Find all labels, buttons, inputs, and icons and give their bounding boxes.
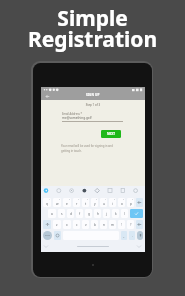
staticText: ? xyxy=(130,223,132,227)
staticText: h xyxy=(97,212,99,216)
button[interactable]: z xyxy=(53,220,61,229)
button[interactable]: a xyxy=(48,209,56,218)
staticText: Step 1 of 3 xyxy=(41,103,145,107)
button[interactable]: x xyxy=(63,220,71,229)
button[interactable]: 6 xyxy=(91,198,98,207)
button[interactable]: ! xyxy=(118,220,125,229)
staticText: 2 xyxy=(59,198,61,201)
button[interactable]: h xyxy=(94,209,101,218)
staticText: _ xyxy=(123,234,125,238)
staticText: 9 xyxy=(123,198,125,201)
staticText: 3 xyxy=(69,198,71,201)
button[interactable]: ?123 xyxy=(43,231,52,240)
staticText: k xyxy=(115,212,117,216)
staticText: f xyxy=(79,212,81,216)
staticText: a xyxy=(51,212,53,216)
staticText: j xyxy=(106,212,107,216)
staticText: NEXT xyxy=(107,132,116,136)
staticText: ?123 xyxy=(45,234,50,237)
staticText: v xyxy=(85,223,87,227)
staticText: l xyxy=(124,212,125,216)
staticText: 7 xyxy=(105,198,107,201)
button[interactable]: _ xyxy=(121,231,127,240)
staticText: 4 xyxy=(78,198,80,201)
button[interactable]: 1 xyxy=(43,198,51,207)
button[interactable]: 9 xyxy=(118,198,125,207)
staticText: z xyxy=(56,223,58,227)
button[interactable] xyxy=(136,220,143,229)
staticText: b xyxy=(94,223,96,227)
staticText: t xyxy=(85,202,87,206)
staticText: r xyxy=(76,202,78,206)
button[interactable]: f xyxy=(76,209,83,218)
staticText: 6 xyxy=(96,198,98,201)
staticText: ! xyxy=(121,223,122,227)
button[interactable]: 4 xyxy=(73,198,80,207)
button[interactable]: 0 xyxy=(127,198,134,207)
button[interactable]: m xyxy=(109,220,116,229)
staticText: n xyxy=(103,223,105,227)
button[interactable]: c xyxy=(73,220,80,229)
button[interactable] xyxy=(43,220,51,229)
button[interactable]: k xyxy=(112,209,119,218)
staticText: Your email will be used for signing in a… xyxy=(61,144,113,153)
button[interactable]: d xyxy=(67,209,74,218)
staticText: p xyxy=(130,202,132,206)
button[interactable]: 7 xyxy=(100,198,107,207)
staticText: q xyxy=(46,202,48,206)
button[interactable]: Back xyxy=(43,92,52,101)
button[interactable] xyxy=(54,231,61,240)
button[interactable]: b xyxy=(91,220,98,229)
button[interactable]: n xyxy=(100,220,107,229)
button[interactable] xyxy=(136,198,143,207)
staticText: d xyxy=(70,212,72,216)
staticText: . xyxy=(132,234,133,238)
button[interactable] xyxy=(137,231,143,240)
button[interactable]: j xyxy=(103,209,110,218)
staticText: c xyxy=(76,223,78,227)
button[interactable]: v xyxy=(82,220,89,229)
staticText: me@something.golf xyxy=(62,116,92,120)
staticText: Email Address * xyxy=(62,112,82,116)
button[interactable]: s xyxy=(58,209,65,218)
staticText: Simple Registration xyxy=(0,4,185,53)
staticText: u xyxy=(103,202,105,206)
staticText: e xyxy=(66,202,68,206)
staticText: 8 xyxy=(114,198,116,201)
staticText: 1 xyxy=(49,198,51,201)
staticText: 0 xyxy=(132,198,134,201)
button[interactable] xyxy=(130,209,143,218)
staticText: i xyxy=(112,202,113,206)
staticText: y xyxy=(94,202,96,206)
staticText: m xyxy=(111,223,114,227)
staticText: o xyxy=(121,202,123,206)
button[interactable]: NEXT xyxy=(101,130,121,138)
button[interactable]: 2 xyxy=(53,198,61,207)
staticText: x xyxy=(66,223,68,227)
staticText: SIGN UP xyxy=(86,93,100,97)
staticText: 5 xyxy=(87,198,89,201)
button[interactable]: 5 xyxy=(82,198,89,207)
button[interactable]: g xyxy=(85,209,92,218)
button[interactable]: 3 xyxy=(63,198,71,207)
staticText: g xyxy=(88,212,90,216)
button[interactable]: ? xyxy=(127,220,134,229)
button[interactable]: l xyxy=(121,209,128,218)
staticText: w xyxy=(56,202,59,206)
button[interactable]: 8 xyxy=(109,198,116,207)
staticText: s xyxy=(61,212,63,216)
